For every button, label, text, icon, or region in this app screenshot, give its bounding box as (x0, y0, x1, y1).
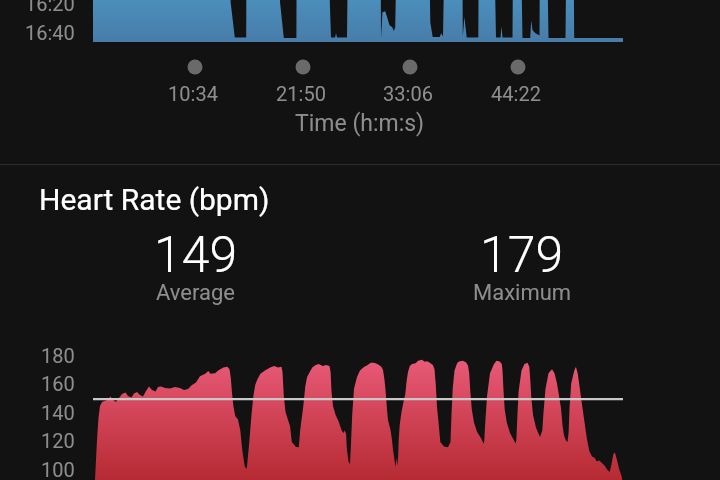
staticText: 120 (41, 429, 75, 452)
staticText: Time (h:m:s) (295, 110, 425, 137)
staticText: 179 (480, 226, 564, 285)
staticText: Heart Rate (bpm) (39, 182, 270, 217)
staticText: 140 (41, 401, 75, 424)
staticText: 180 (41, 344, 75, 367)
staticText: 149 (154, 226, 238, 285)
staticText: 16:20 (25, 0, 75, 15)
staticText: Maximum (473, 280, 572, 306)
staticText: 160 (41, 372, 75, 395)
staticText: 33:06 (383, 82, 433, 105)
staticText: Average (156, 280, 236, 306)
staticText: 100 (41, 458, 75, 480)
staticText: 44:22 (491, 82, 541, 105)
staticText: 16:40 (25, 21, 75, 44)
staticText: 21:50 (276, 82, 326, 105)
staticText: 10:34 (168, 82, 218, 105)
